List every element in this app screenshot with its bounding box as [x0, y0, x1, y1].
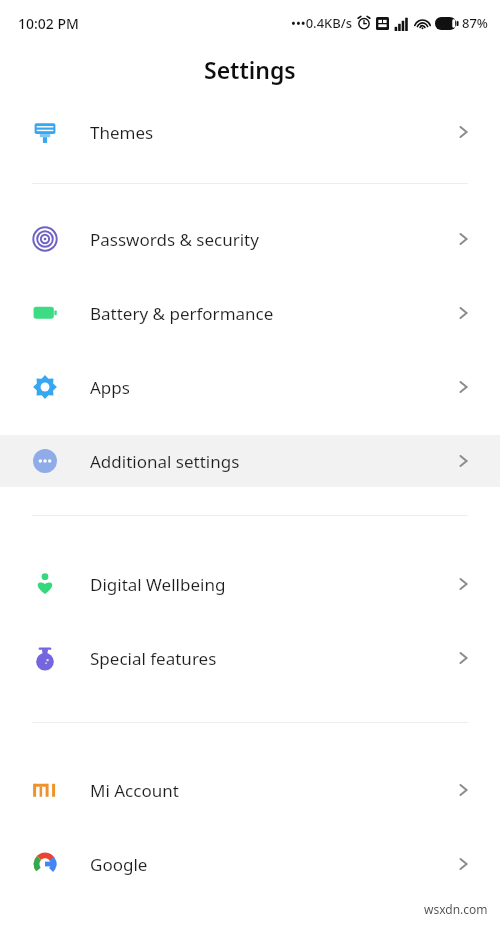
staticText: 10:02 PM — [18, 14, 79, 33]
staticText: Google — [90, 853, 148, 876]
button[interactable]: Google — [0, 838, 500, 890]
staticText: Settings — [204, 54, 296, 85]
staticText: wsxdn.com — [424, 901, 488, 917]
staticText: Passwords & security — [90, 228, 259, 251]
staticText: Digital Wellbeing — [90, 573, 226, 596]
staticText: Apps — [90, 376, 130, 399]
staticText: Special features — [90, 647, 217, 670]
button[interactable]: Mi Account — [0, 764, 500, 816]
button[interactable]: Battery & performance — [0, 287, 500, 339]
button[interactable]: Additional settings — [0, 435, 500, 487]
button[interactable]: Digital Wellbeing — [0, 558, 500, 610]
button[interactable]: Themes — [0, 106, 500, 158]
button[interactable]: Apps — [0, 361, 500, 413]
staticText: Battery & performance — [90, 302, 274, 325]
button[interactable]: Special features — [0, 632, 500, 684]
staticText: •••0.4KB/s — [291, 14, 353, 32]
button[interactable]: Passwords & security — [0, 213, 500, 265]
staticText: Additional settings — [90, 450, 240, 473]
staticText: 87% — [462, 14, 488, 32]
staticText: Themes — [90, 121, 154, 144]
staticText: Mi Account — [90, 779, 179, 802]
